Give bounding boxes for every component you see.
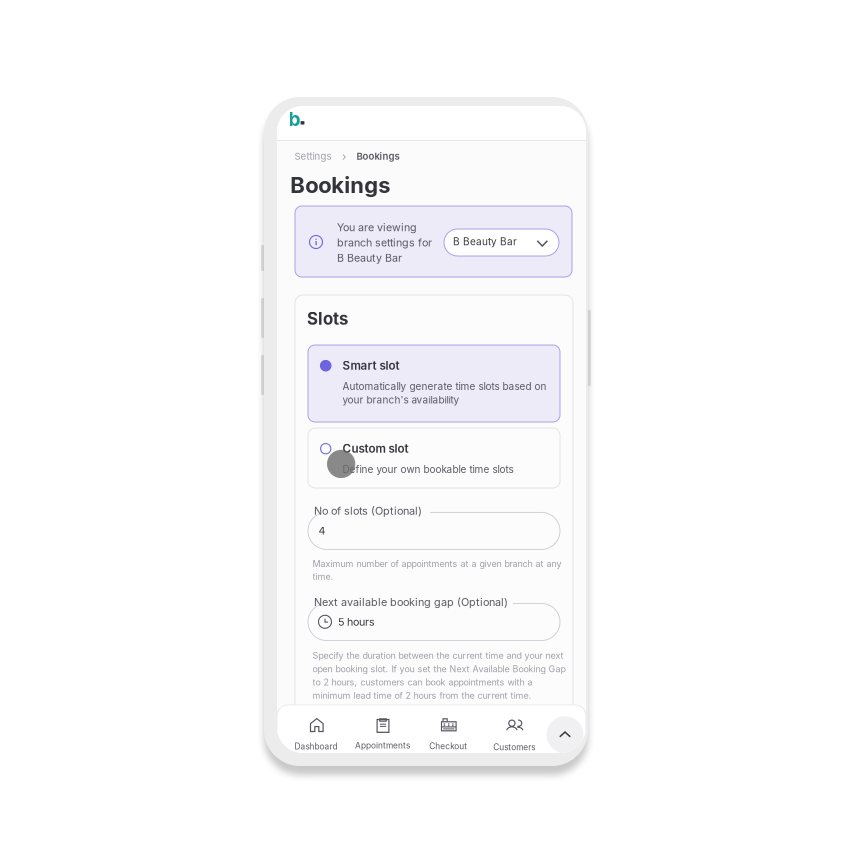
staticText: time. <box>313 571 334 582</box>
staticText: Customers <box>493 742 535 752</box>
staticText: Define your own bookable time slots <box>342 463 513 475</box>
staticText: 4 <box>318 524 325 537</box>
staticText: 5 hours <box>338 615 375 628</box>
staticText: You are viewing <box>337 221 417 234</box>
button[interactable]: Smart slot <box>308 345 560 422</box>
staticText: Automatically generate time slots based … <box>342 380 546 392</box>
button[interactable]: Expand menu <box>546 716 583 753</box>
button[interactable]: Checkout <box>419 706 479 750</box>
button[interactable]: Appointments <box>353 706 413 750</box>
staticText: minimum lead time of 2 hours from the cu… <box>313 690 532 701</box>
button[interactable]: Customers <box>485 707 545 751</box>
button[interactable]: B Beauty Bar <box>444 229 559 256</box>
staticText: › <box>342 149 346 163</box>
staticText: B Beauty Bar <box>453 236 517 248</box>
staticText: open booking slot. If you set the Next A… <box>313 663 566 674</box>
staticText: Next available booking gap (Optional) <box>314 595 508 609</box>
staticText: B Beauty Bar <box>337 251 402 264</box>
staticText: Checkout <box>429 741 467 751</box>
staticText: your branch's availability <box>342 394 459 406</box>
staticText: Bookings <box>290 172 390 198</box>
staticText: Maximum number of appointments at a give… <box>313 558 562 569</box>
staticText: No of slots (Optional) <box>314 504 422 517</box>
staticText: Slots <box>307 308 348 329</box>
staticText: Appointments <box>355 741 410 751</box>
staticText: branch settings for <box>337 236 432 249</box>
staticText: Specify the duration between the current… <box>313 650 564 661</box>
staticText: Settings <box>295 150 332 162</box>
button[interactable]: Settings <box>295 150 332 162</box>
staticText: Bookings <box>357 150 400 162</box>
staticText: Smart slot <box>342 359 399 373</box>
staticText: Dashboard <box>294 741 337 751</box>
button[interactable]: Custom slot <box>308 428 560 488</box>
staticText: to 2 hours, customers can book appointme… <box>313 677 533 688</box>
staticText: Custom slot <box>342 442 408 456</box>
staticText: b <box>289 108 301 131</box>
button[interactable]: Dashboard <box>287 706 347 750</box>
